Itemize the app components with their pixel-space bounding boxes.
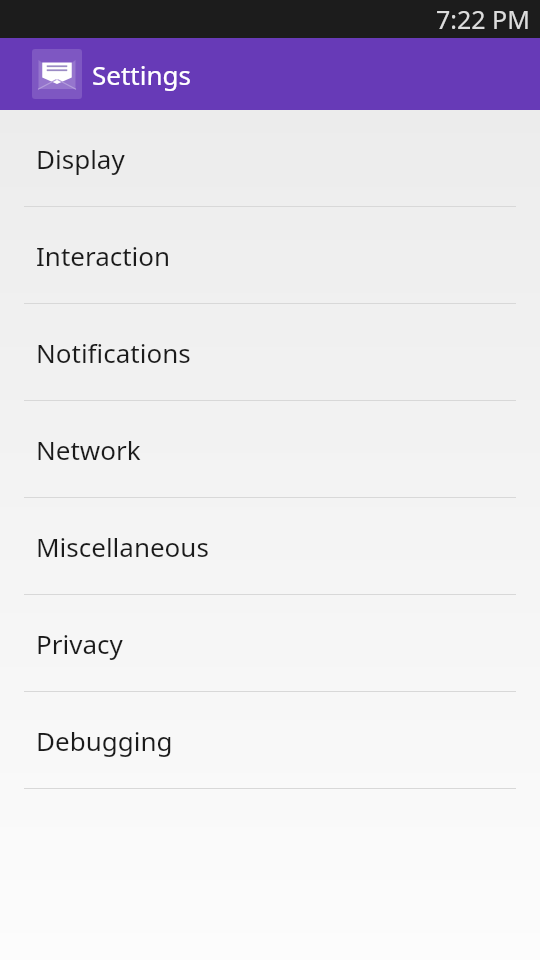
staticText: 7:22 PM — [436, 2, 530, 36]
button[interactable]: Debugging — [0, 692, 540, 789]
button[interactable]: Interaction — [0, 207, 540, 304]
staticText: Settings — [92, 57, 191, 92]
staticText: Miscellaneous — [36, 529, 209, 564]
staticText: Debugging — [36, 723, 173, 758]
staticText: Network — [36, 432, 141, 467]
staticText: Interaction — [36, 238, 171, 273]
button[interactable]: Miscellaneous — [0, 498, 540, 595]
staticText: Display — [36, 141, 125, 176]
staticText: Notifications — [36, 335, 191, 370]
button[interactable]: Display — [0, 110, 540, 207]
staticText: Privacy — [36, 626, 123, 661]
button[interactable]: Notifications — [0, 304, 540, 401]
button[interactable]: Network — [0, 401, 540, 498]
other: App icon — [32, 49, 82, 99]
button[interactable]: Privacy — [0, 595, 540, 692]
